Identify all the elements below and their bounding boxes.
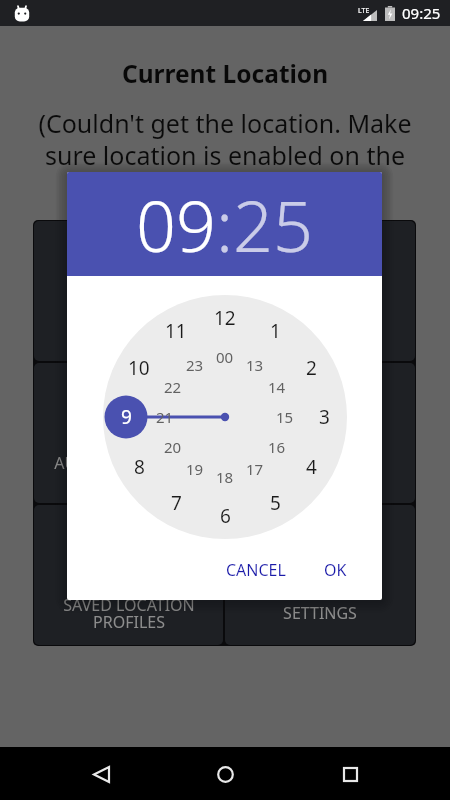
staticText: 00	[216, 347, 234, 367]
staticText: CANCEL	[226, 559, 286, 581]
staticText: 18	[216, 467, 234, 487]
staticText: 20	[164, 437, 182, 457]
staticText: 22	[164, 377, 182, 397]
staticText: 5	[270, 490, 281, 516]
staticText: 13	[246, 355, 264, 375]
staticText: 1	[270, 318, 281, 344]
staticText: 17	[246, 459, 264, 479]
staticText: AUTOMATIC ALARM PROFILES	[54, 452, 203, 490]
staticText: 3	[319, 404, 330, 430]
button[interactable]: Back	[77, 750, 125, 798]
staticText: 4	[306, 454, 317, 480]
button[interactable]: OK	[316, 551, 355, 589]
staticText: 23	[186, 355, 204, 375]
staticText: 15	[276, 407, 294, 427]
staticText: 6	[220, 503, 231, 529]
staticText: 7	[171, 490, 182, 516]
staticText: SAVED LOCATION PROFILES	[63, 594, 195, 632]
staticText: 11	[165, 318, 187, 344]
staticText: 21	[156, 407, 174, 427]
staticText: 14	[268, 377, 286, 397]
button[interactable]: :25	[216, 177, 314, 272]
staticText: 12	[214, 305, 236, 331]
staticText: OK	[324, 559, 347, 581]
staticText: 2	[306, 355, 317, 381]
button[interactable]: CANCEL	[218, 551, 294, 589]
staticText: 16	[268, 437, 286, 457]
staticText: 09:25	[402, 3, 441, 23]
staticText: (Couldn't get the location. Make sure lo…	[28, 106, 422, 204]
staticText: 9	[121, 404, 132, 430]
staticText: 19	[186, 459, 204, 479]
button[interactable]: 09	[136, 177, 216, 272]
button[interactable]	[225, 221, 415, 361]
staticText: Current Location	[0, 57, 450, 90]
button[interactable]	[34, 221, 223, 361]
button[interactable]: Recent apps	[326, 750, 374, 798]
staticText: 10	[128, 355, 150, 381]
button[interactable]: SETTINGS	[225, 505, 415, 645]
button[interactable]: SAVED LOCATION PROFILES	[34, 505, 223, 645]
button[interactable]	[225, 363, 415, 503]
staticText: LTE	[358, 6, 370, 16]
button[interactable]: Home	[201, 750, 249, 798]
staticText: 8	[134, 454, 145, 480]
staticText: SETTINGS	[283, 602, 357, 624]
button[interactable]: AUTOMATIC ALARM PROFILES	[34, 363, 223, 503]
